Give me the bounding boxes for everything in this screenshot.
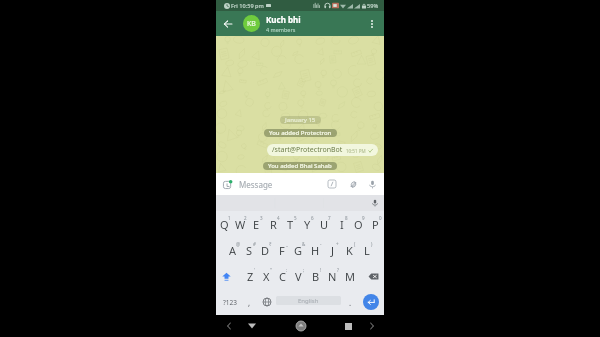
button[interactable]: Commands [325, 177, 339, 191]
staticText: O [354, 217, 363, 232]
staticText: 59% [367, 2, 379, 10]
button[interactable]: More options [364, 16, 380, 32]
staticText: + [336, 241, 339, 247]
button[interactable]: Previous [223, 320, 235, 332]
staticText: T [287, 217, 294, 232]
button[interactable]: Enter [363, 294, 379, 310]
staticText: Kuch bhi [266, 14, 301, 25]
button[interactable]: R [265, 211, 282, 237]
button[interactable]: S [241, 237, 257, 263]
button[interactable]: Backspace [363, 263, 384, 289]
button[interactable]: L [358, 237, 375, 263]
button[interactable]: I [333, 211, 350, 237]
staticText: S [246, 243, 253, 258]
button[interactable]: Attach [346, 177, 360, 191]
button[interactable]: ?123 [220, 289, 239, 315]
staticText: 9 [362, 215, 365, 221]
staticText: 10:51 PM [346, 148, 366, 154]
staticText: & [302, 241, 306, 247]
button[interactable]: N [324, 263, 341, 289]
button[interactable]: X [258, 263, 274, 289]
button[interactable]: G [290, 237, 307, 263]
button[interactable]: B [307, 263, 324, 289]
button[interactable]: H [307, 237, 324, 263]
staticText: ; [303, 267, 305, 273]
button[interactable]: C [274, 263, 290, 289]
button[interactable]: Group avatar [243, 15, 260, 32]
staticText: D [261, 243, 270, 258]
staticText: F [279, 243, 285, 258]
staticText: A [229, 243, 237, 258]
button[interactable]: Shift [216, 263, 237, 289]
staticText: English [298, 297, 319, 305]
staticText: L [364, 243, 370, 258]
staticText: M [345, 269, 355, 284]
staticText: 4 members [266, 26, 296, 33]
staticText: G [294, 243, 303, 258]
button[interactable]: U [316, 211, 333, 237]
button[interactable]: D [257, 237, 273, 263]
staticText: You added Protectron [269, 129, 332, 137]
staticText: 0 [379, 215, 382, 221]
button[interactable]: You added Protectron [264, 129, 337, 137]
staticText: January 15 [285, 116, 316, 124]
button[interactable]: K [341, 237, 358, 263]
button[interactable]: Change language [261, 289, 272, 315]
button[interactable]: E [248, 211, 265, 237]
button[interactable]: /start@ProtectronBot [267, 144, 378, 156]
button[interactable]: You added Bhai Sahab [263, 162, 337, 170]
staticText: U [320, 217, 329, 232]
staticText: 4 [277, 215, 280, 221]
staticText: R [270, 217, 277, 232]
button[interactable]: O [350, 211, 367, 237]
button[interactable]: Back [221, 17, 235, 31]
staticText: ! [320, 267, 322, 273]
button[interactable]: W [232, 211, 248, 237]
button[interactable]: P [367, 211, 384, 237]
button[interactable]: Stickers [220, 177, 234, 191]
staticText: I [340, 217, 344, 232]
staticText: Y [304, 217, 311, 232]
staticText: K [346, 243, 353, 258]
staticText: . [349, 297, 352, 308]
button[interactable]: F [273, 237, 290, 263]
button[interactable]: J [324, 237, 341, 263]
button[interactable]: Voice message [365, 177, 379, 191]
button[interactable]: . [345, 289, 356, 315]
staticText: E [253, 217, 260, 232]
button[interactable]: January 15 [280, 116, 321, 124]
button[interactable]: Q [216, 211, 232, 237]
staticText: 6 [311, 215, 314, 221]
staticText: Message [239, 179, 273, 190]
staticText: - [320, 241, 322, 247]
staticText: : [286, 267, 288, 273]
staticText: 8 [345, 215, 348, 221]
staticText: Fri 10:59 pm [231, 2, 264, 10]
button[interactable]: English [276, 296, 341, 305]
staticText: C [279, 269, 286, 284]
staticText: X [263, 269, 270, 284]
staticText: _ [286, 241, 288, 247]
button[interactable]: Y [299, 211, 316, 237]
button[interactable]: T [282, 211, 299, 237]
staticText: Z [247, 269, 254, 284]
staticText: ( [354, 241, 356, 247]
staticText: # [253, 241, 256, 247]
button[interactable]: Kuch bhi [266, 14, 364, 33]
staticText: ) [371, 241, 373, 247]
staticText: 1 [228, 215, 231, 221]
button[interactable]: Z [242, 263, 258, 289]
button[interactable]: Next [366, 320, 378, 332]
staticText: W [235, 217, 246, 232]
button[interactable]: , [244, 289, 255, 315]
button[interactable]: Recents [342, 320, 354, 332]
button[interactable]: A [225, 237, 241, 263]
staticText: B [312, 269, 320, 284]
button[interactable]: Back [246, 320, 258, 332]
button[interactable]: V [290, 263, 307, 289]
button[interactable]: M [341, 263, 358, 289]
button[interactable]: Home [295, 320, 307, 332]
button[interactable]: Voice input [369, 197, 381, 209]
staticText: /start@ProtectronBot [272, 145, 343, 155]
staticText: 7 [328, 215, 331, 221]
